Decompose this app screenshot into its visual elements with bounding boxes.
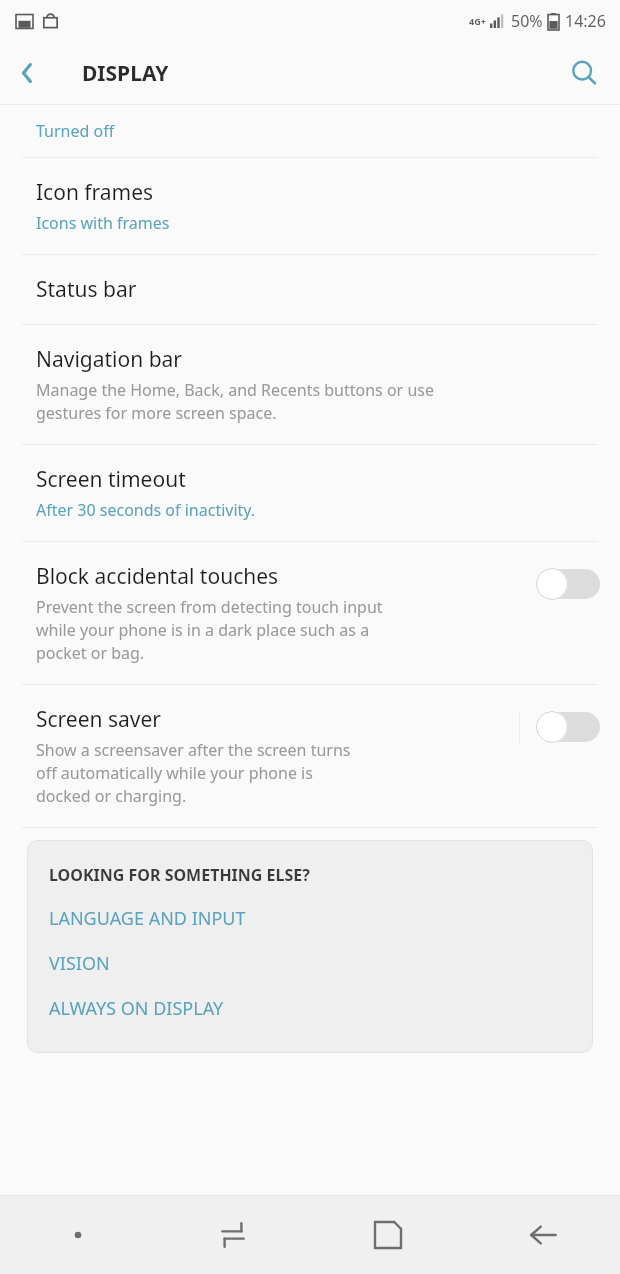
staticText: Status bar — [36, 275, 137, 304]
staticText: LANGUAGE AND INPUT — [49, 906, 246, 931]
button[interactable]: ALWAYS ON DISPLAY — [49, 986, 573, 1031]
staticText: Turned off — [36, 120, 115, 142]
button[interactable]: Home — [310, 1196, 465, 1274]
button[interactable]: LANGUAGE AND INPUT — [49, 896, 573, 941]
staticText: Screen timeout — [36, 465, 186, 494]
staticText: LOOKING FOR SOMETHING ELSE? — [49, 864, 310, 886]
staticText: Icon frames — [36, 178, 154, 207]
button[interactable]: Back — [465, 1196, 620, 1274]
staticText: Screen saver — [36, 705, 162, 734]
button[interactable]: Icon frames — [0, 158, 620, 254]
button[interactable]: Status bar — [0, 255, 620, 324]
button[interactable]: Keyboard indicator — [0, 1196, 155, 1274]
staticText: Manage the Home, Back, and Recents butto… — [36, 379, 434, 424]
button[interactable]: Recents — [155, 1196, 310, 1274]
staticText: Navigation bar — [36, 345, 183, 374]
button[interactable]: Screen timeout — [0, 445, 620, 541]
button[interactable]: Search — [556, 45, 612, 101]
button[interactable]: Screen saver toggle — [536, 709, 600, 745]
staticText: 50% — [511, 10, 543, 32]
staticText: Block accidental touches — [36, 562, 279, 591]
staticText: ALWAYS ON DISPLAY — [49, 996, 224, 1021]
staticText: After 30 seconds of inactivity. — [36, 499, 256, 521]
button[interactable]: Screen saver — [0, 685, 620, 827]
staticText: VISION — [49, 951, 110, 976]
button[interactable]: Back — [0, 45, 56, 101]
button[interactable]: VISION — [49, 941, 573, 986]
button[interactable]: Navigation bar — [0, 325, 620, 444]
staticText: 14:26 — [565, 10, 606, 32]
staticText: Icons with frames — [36, 212, 170, 234]
staticText: Show a screensaver after the screen turn… — [36, 739, 351, 807]
button[interactable]: Block accidental touches toggle — [536, 566, 600, 602]
staticText: 4G+ — [469, 15, 486, 27]
staticText: DISPLAY — [82, 59, 169, 88]
button[interactable]: Turned off — [0, 105, 620, 157]
staticText: Prevent the screen from detecting touch … — [36, 596, 383, 664]
button[interactable]: Block accidental touches — [0, 542, 620, 684]
